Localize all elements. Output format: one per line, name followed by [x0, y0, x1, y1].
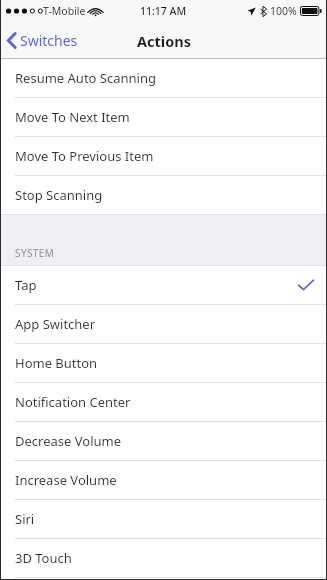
button[interactable]: App Switcher — [1, 305, 326, 343]
button[interactable]: Increase Volume — [1, 461, 326, 499]
button[interactable]: 3D Touch — [1, 539, 326, 577]
staticText: Home Button — [15, 354, 98, 372]
staticText: 3D Touch — [15, 549, 72, 567]
button[interactable]: Move To Previous Item — [1, 137, 326, 175]
staticText: 11:17 AM — [140, 4, 187, 18]
staticText: T-Mobile — [43, 4, 86, 18]
staticText: Actions — [137, 31, 191, 51]
staticText: Notification Center — [15, 393, 131, 411]
button[interactable]: Notification Center — [1, 383, 326, 421]
other: Selected — [298, 279, 314, 291]
button[interactable]: Home Button — [1, 344, 326, 382]
staticText: Increase Volume — [15, 471, 117, 489]
button[interactable]: Tap — [1, 266, 326, 304]
staticText: Stop Scanning — [15, 186, 103, 204]
staticText: Move To Previous Item — [15, 147, 154, 165]
button[interactable]: Resume Auto Scanning — [1, 59, 326, 97]
button[interactable]: Decrease Volume — [1, 422, 326, 460]
staticText: Tap — [15, 276, 37, 294]
staticText: Move To Next Item — [15, 108, 130, 126]
button[interactable]: Siri — [1, 500, 326, 538]
button[interactable]: Stop Scanning — [1, 176, 326, 214]
staticText: Siri — [15, 510, 35, 528]
staticText: Decrease Volume — [15, 432, 122, 450]
button[interactable]: Move To Next Item — [1, 98, 326, 136]
staticText: Resume Auto Scanning — [15, 69, 156, 87]
button[interactable]: Switches — [1, 22, 86, 59]
staticText: 100% — [270, 4, 297, 18]
staticText: App Switcher — [15, 315, 96, 333]
staticText: SYSTEM — [15, 246, 55, 260]
staticText: Switches — [20, 31, 78, 50]
